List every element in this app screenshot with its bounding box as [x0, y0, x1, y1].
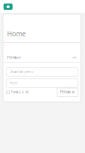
staticText: Přihlásit se — [60, 90, 75, 94]
staticText: Pamatuj si mě — [11, 90, 29, 94]
button[interactable]: Přihlášení — [3, 43, 81, 62]
button[interactable]: Přihlásit se — [57, 88, 78, 97]
button[interactable]: Home — [0, 0, 16, 12]
button[interactable]: Heslo — [6, 79, 78, 87]
button[interactable]: Uživatelské jméno — [6, 68, 78, 76]
staticText: Heslo — [9, 81, 17, 85]
staticText: Home — [7, 29, 26, 38]
staticText: Uživatelské jméno — [9, 70, 33, 74]
button[interactable]: Pamatuj si mě — [6, 88, 29, 96]
staticText: Přihlášení — [7, 56, 21, 59]
